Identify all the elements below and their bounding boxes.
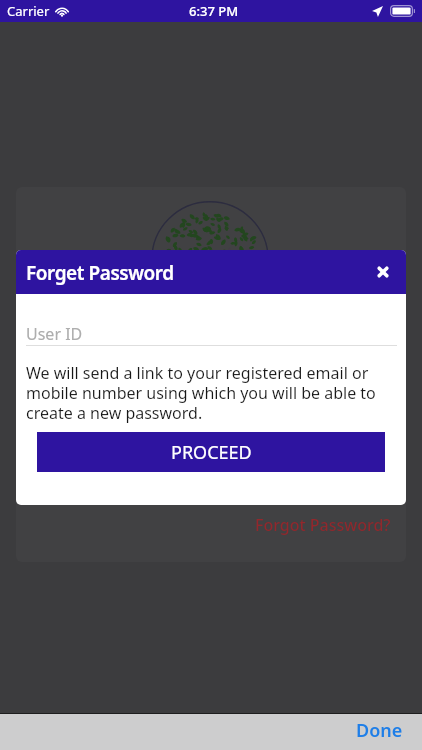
staticText: 6:37 PM (189, 2, 239, 20)
staticText: Carrier (7, 2, 50, 20)
staticText: User ID (26, 323, 83, 345)
staticText: We will send a link to your registered e… (26, 362, 386, 423)
button[interactable]: PROCEED (37, 432, 385, 472)
staticText: Forgot Password? (255, 514, 391, 536)
staticText: Done (356, 718, 403, 742)
staticText: Forget Password (26, 260, 174, 286)
button[interactable]: User ID (26, 312, 397, 346)
button[interactable]: Close (366, 255, 400, 289)
button[interactable]: Done (337, 712, 422, 748)
staticText: PROCEED (171, 440, 252, 465)
